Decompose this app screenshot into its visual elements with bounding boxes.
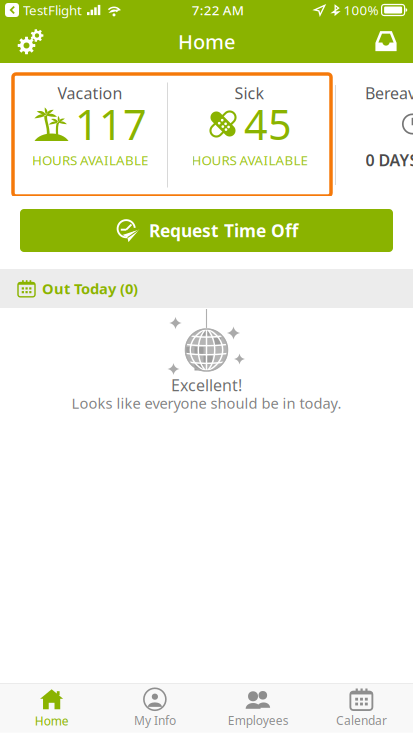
staticText: TestFlight	[23, 1, 82, 19]
staticText: HOURS AVAILABLE	[191, 151, 307, 169]
staticText: Bereavement	[365, 82, 413, 104]
button[interactable]: Calendar	[310, 684, 413, 733]
staticText: Excellent!	[171, 374, 242, 396]
staticText: Looks like everyone should be in today.	[71, 393, 341, 413]
button[interactable]: Employees	[206, 684, 310, 733]
button[interactable]: Home	[0, 684, 103, 733]
staticText: 0 DAYS USED	[365, 149, 413, 171]
button[interactable]: Vacation	[13, 74, 167, 196]
staticText: Out Today (0)	[42, 279, 138, 298]
staticText: My Info	[134, 712, 176, 728]
button[interactable]: Request Time Off	[20, 209, 393, 252]
staticText: Calendar	[336, 712, 387, 728]
staticText: Home	[35, 713, 69, 729]
staticText: Home	[178, 28, 235, 55]
staticText: Sick	[234, 82, 264, 104]
staticText: Employees	[228, 712, 289, 728]
staticText: HOURS AVAILABLE	[32, 151, 148, 169]
button[interactable]: My Info	[103, 684, 206, 733]
button[interactable]: Settings	[0, 20, 61, 63]
staticText: Vacation	[57, 82, 122, 104]
staticText: Request Time Off	[149, 219, 298, 242]
staticText: 45	[244, 97, 292, 151]
staticText: 117	[75, 97, 147, 151]
staticText: 7:22 AM	[192, 1, 244, 19]
staticText: 100%	[344, 1, 379, 19]
button[interactable]: Inbox	[359, 20, 413, 63]
button[interactable]: Bereavement	[336, 74, 413, 196]
button[interactable]: Sick	[168, 74, 331, 196]
